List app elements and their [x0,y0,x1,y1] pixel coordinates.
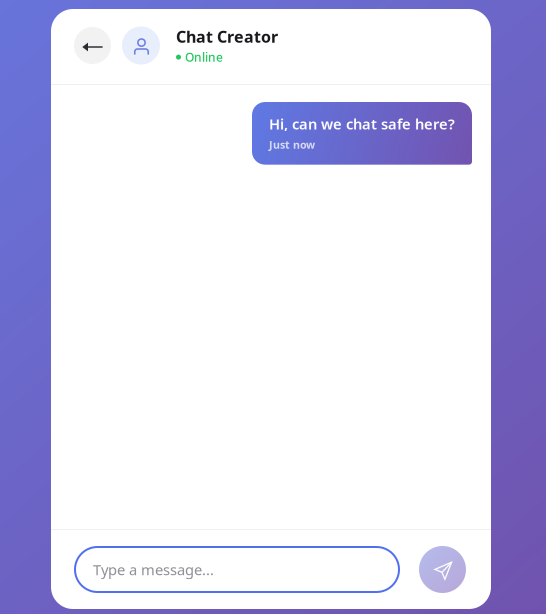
button[interactable]: Type a message... [75,547,399,592]
staticText: Just now [269,137,315,152]
staticText: Type a message... [93,560,214,579]
staticText: Chat Creator [176,26,278,47]
staticText: Online [185,49,223,65]
button[interactable]: Back [74,27,111,64]
staticText: Hi, can we chat safe here? [269,114,455,133]
button[interactable]: Chat Creator [111,26,278,65]
button[interactable]: Send [419,546,466,593]
